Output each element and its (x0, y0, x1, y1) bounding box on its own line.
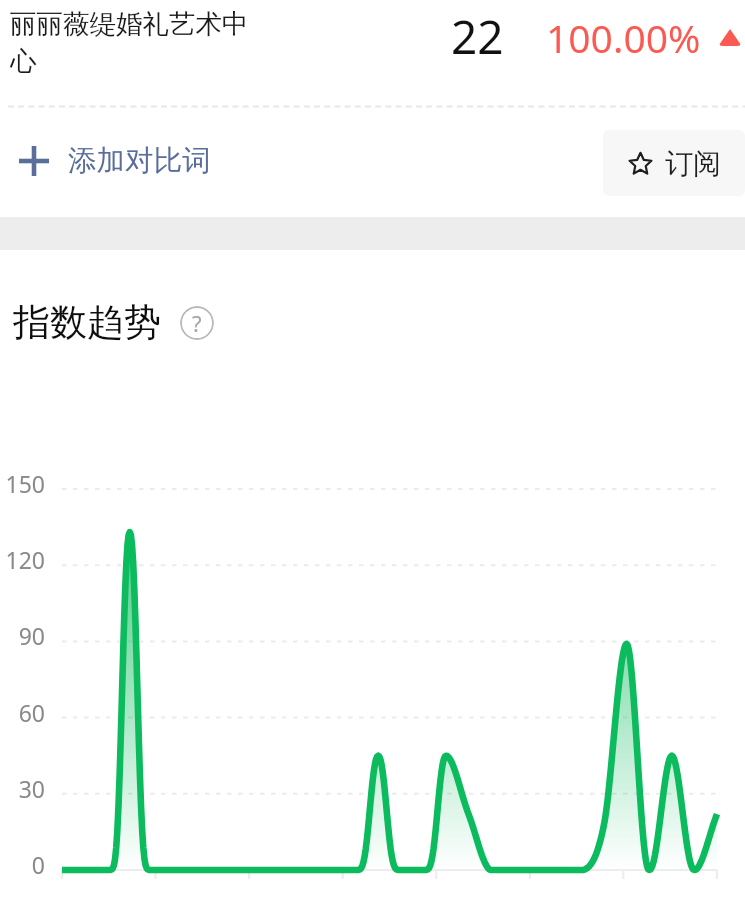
staticText: 120 (0, 544, 45, 575)
staticText: 100.00% (546, 11, 701, 64)
staticText: ? (192, 308, 202, 338)
other: Help (180, 306, 214, 340)
staticText: 0 (0, 849, 45, 880)
staticText: 22 (451, 5, 504, 68)
button[interactable]: 指数趋势 (13, 299, 214, 346)
staticText: 订阅 (665, 146, 721, 181)
button[interactable]: 订阅 (603, 130, 745, 196)
staticText: 添加对比词 (68, 143, 211, 179)
staticText: 150 (0, 468, 45, 499)
staticText: 60 (0, 697, 45, 728)
button[interactable]: 添加对比词 (12, 132, 217, 190)
staticText: 30 (0, 773, 45, 804)
staticText: 丽丽薇缇婚礼艺术中心 (10, 7, 262, 78)
staticText: 90 (0, 620, 45, 651)
staticText: 指数趋势 (13, 299, 161, 346)
